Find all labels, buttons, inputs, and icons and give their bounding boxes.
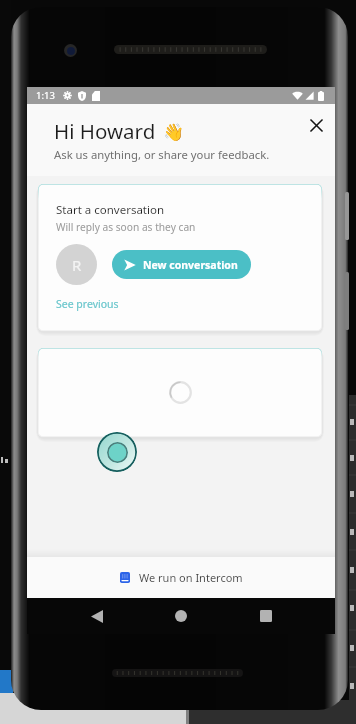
staticText: 👋 xyxy=(163,122,184,142)
staticText: We run on Intercom xyxy=(139,570,243,585)
button[interactable]: Recent apps xyxy=(251,601,281,631)
staticText: R xyxy=(72,255,82,275)
staticText: See previous xyxy=(56,297,119,311)
button[interactable]: Open messenger xyxy=(97,432,137,472)
button[interactable]: Back xyxy=(82,601,112,631)
staticText: New conversation xyxy=(143,258,238,272)
staticText: Will reply as soon as they can xyxy=(56,220,196,234)
staticText: Ask us anything, or share your feedback. xyxy=(54,147,270,162)
button[interactable]: New conversation xyxy=(112,250,251,279)
staticText: Hi Howard xyxy=(54,117,156,145)
button[interactable]: See previous xyxy=(56,297,119,311)
staticText: Start a conversation xyxy=(56,202,165,218)
staticText: 1:13 xyxy=(36,89,55,102)
button[interactable]: Close xyxy=(305,114,328,137)
button[interactable]: Home xyxy=(166,601,196,631)
